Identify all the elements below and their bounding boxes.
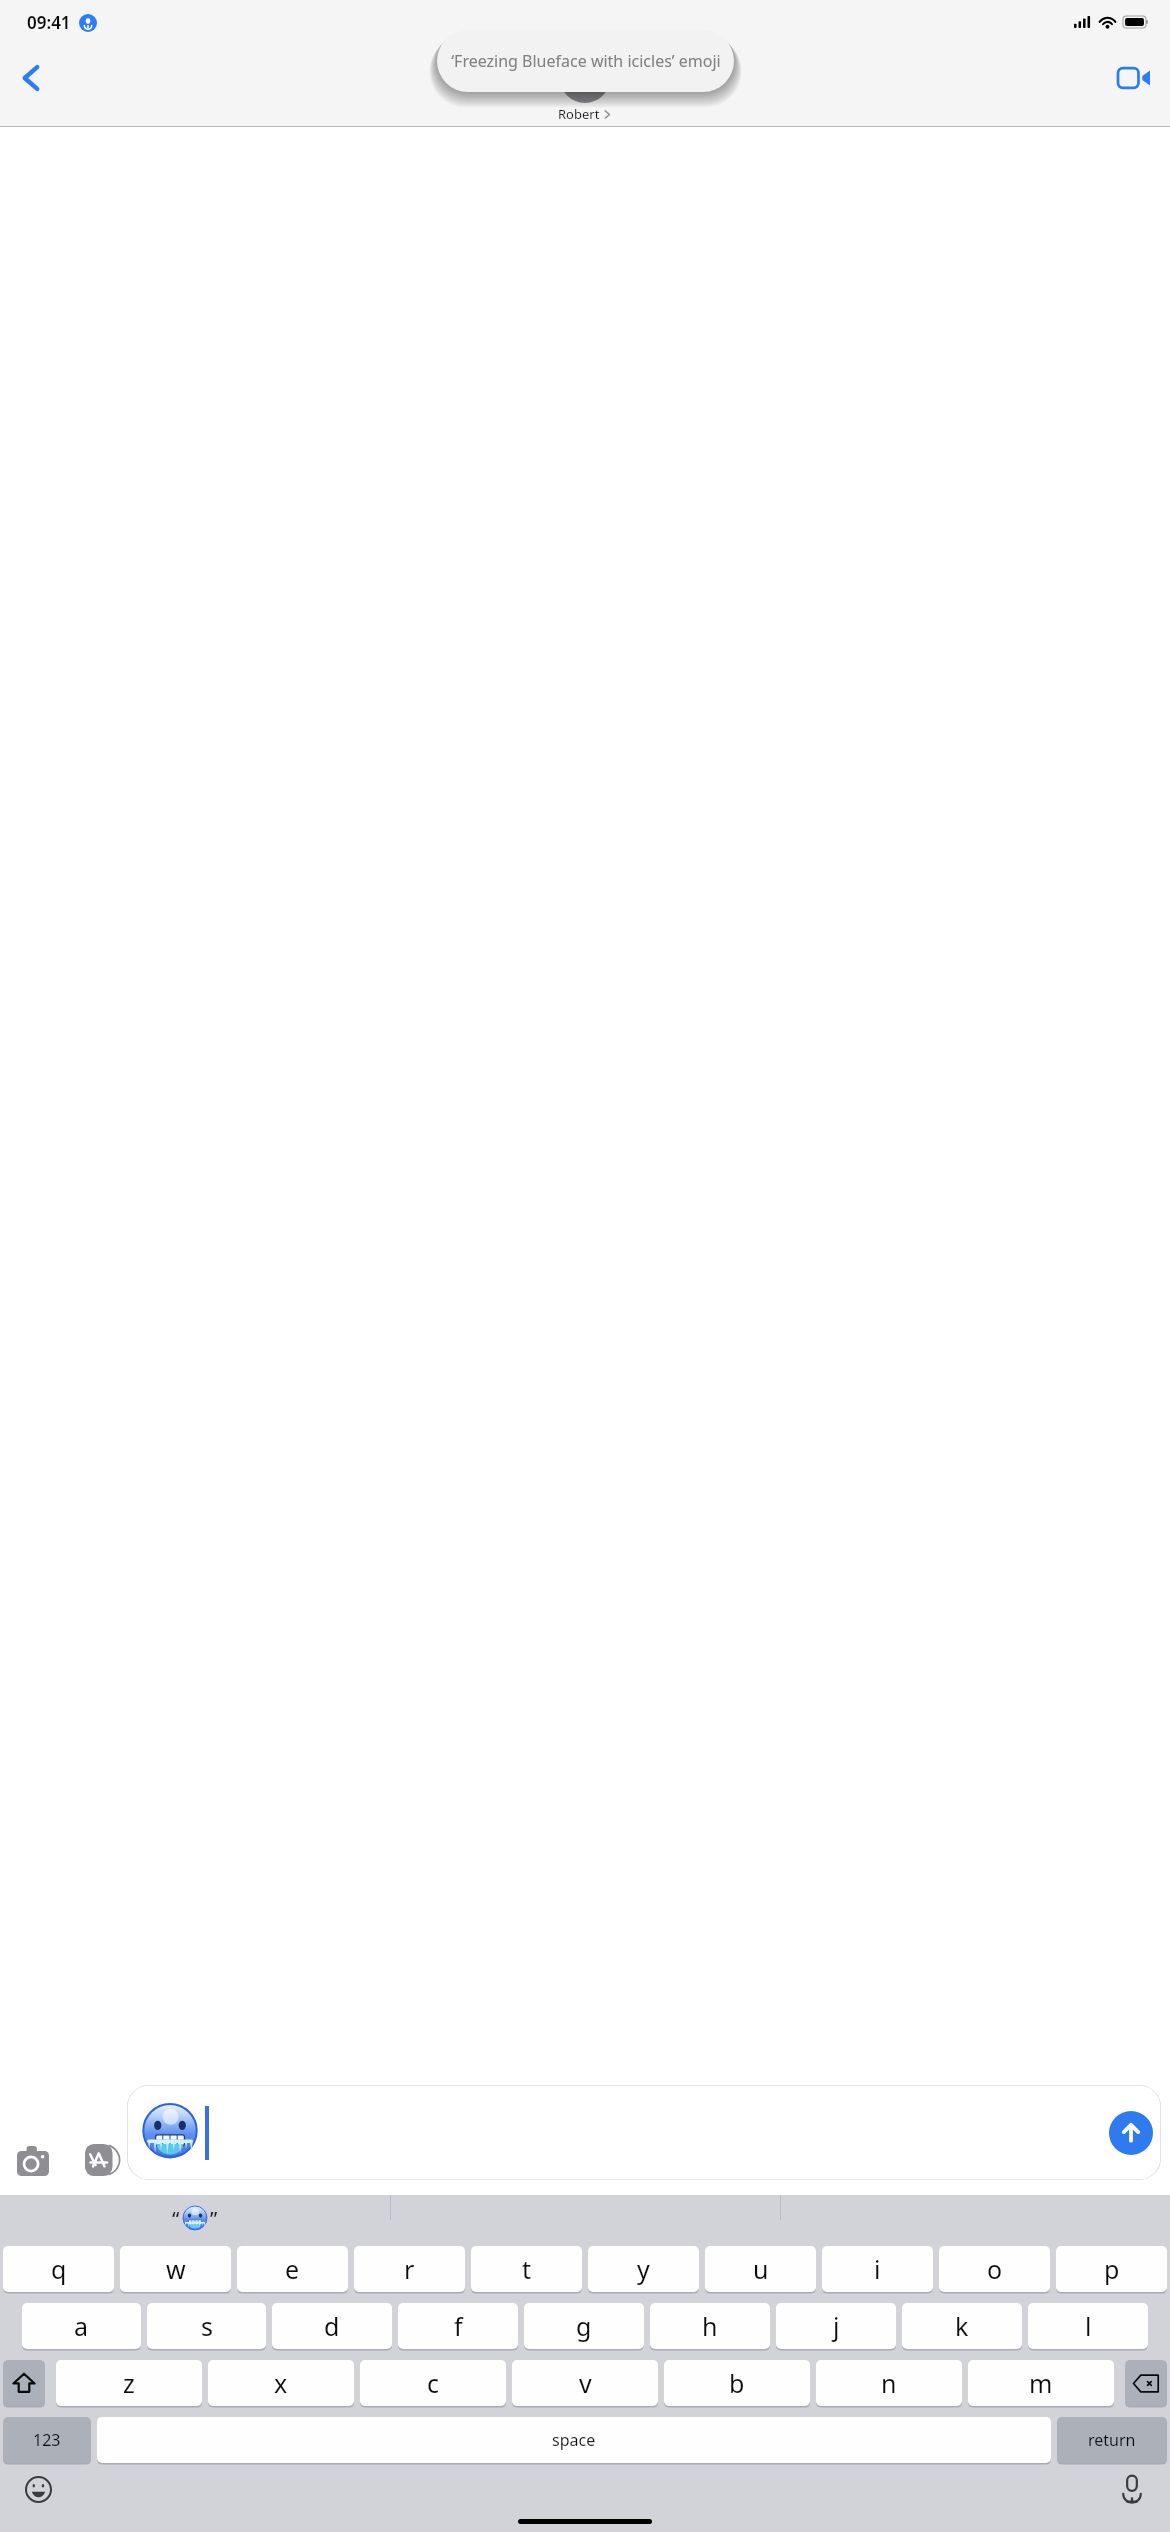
button[interactable]: d (272, 2303, 392, 2349)
button[interactable]: e (237, 2246, 348, 2292)
button[interactable]: c (360, 2360, 506, 2406)
button[interactable]: m (968, 2360, 1114, 2406)
button[interactable]: Send (1109, 2111, 1153, 2155)
staticText: g (576, 2309, 592, 2343)
button[interactable]: x (208, 2360, 354, 2406)
button[interactable]: ‘Freezing Blueface with icicles’ emoji (437, 30, 734, 92)
button[interactable]: Dictation (1108, 2465, 1156, 2513)
staticText: ‘Freezing Blueface with icicles’ emoji (451, 50, 721, 72)
staticText: i (874, 2252, 881, 2286)
staticText: y (637, 2252, 650, 2286)
button[interactable]: App Store apps (78, 2137, 124, 2183)
staticText: o (987, 2252, 1003, 2286)
button[interactable]: 123 (3, 2417, 91, 2463)
button[interactable]: r (354, 2246, 465, 2292)
button[interactable]: k (902, 2303, 1022, 2349)
button[interactable]: Send (127, 2085, 1161, 2180)
staticText: d (324, 2309, 340, 2343)
button[interactable]: space (97, 2417, 1051, 2463)
staticText: f (454, 2309, 463, 2343)
staticText: r (404, 2252, 415, 2286)
button[interactable]: f (398, 2303, 518, 2349)
button[interactable]: n (816, 2360, 962, 2406)
button[interactable]: Shift (3, 2360, 45, 2406)
staticText: ” (210, 2206, 218, 2232)
button[interactable]: i (822, 2246, 933, 2292)
button[interactable]: o (939, 2246, 1050, 2292)
staticText: Robert (558, 105, 600, 123)
button[interactable]: l (1028, 2303, 1148, 2349)
button[interactable]: j (776, 2303, 896, 2349)
button[interactable]: Back (8, 54, 56, 102)
button[interactable]: s (147, 2303, 266, 2349)
staticText: c (427, 2366, 440, 2400)
staticText: “ (172, 2206, 180, 2232)
staticText: l (1085, 2309, 1092, 2343)
button[interactable]: v (512, 2360, 658, 2406)
staticText: q (51, 2252, 67, 2286)
button[interactable]: Robert (558, 105, 612, 123)
staticText: e (285, 2252, 300, 2286)
button[interactable]: “ (168, 2202, 222, 2236)
button[interactable]: Robert contact photo (560, 53, 610, 103)
staticText: z (123, 2366, 135, 2400)
button[interactable]: Delete (1125, 2360, 1167, 2406)
button[interactable]: Camera (10, 2137, 56, 2183)
button[interactable]: y (588, 2246, 699, 2292)
button[interactable]: FaceTime video call (1110, 54, 1158, 102)
staticText: j (833, 2309, 840, 2343)
staticText: v (579, 2366, 592, 2400)
staticText: a (74, 2309, 89, 2343)
button[interactable]: z (56, 2360, 202, 2406)
staticText: x (274, 2366, 288, 2400)
button[interactable]: a (22, 2303, 141, 2349)
staticText: u (753, 2252, 769, 2286)
staticText: 123 (33, 2429, 61, 2451)
staticText: p (1104, 2252, 1120, 2286)
button[interactable]: u (705, 2246, 816, 2292)
staticText: return (1088, 2429, 1136, 2451)
staticText: h (702, 2309, 718, 2343)
button[interactable]: b (664, 2360, 810, 2406)
staticText: w (166, 2252, 186, 2286)
staticText: 09:41 (27, 11, 71, 34)
button[interactable]: w (120, 2246, 231, 2292)
button[interactable]: g (524, 2303, 644, 2349)
button[interactable]: t (471, 2246, 582, 2292)
button[interactable]: Emoji keyboard (14, 2465, 62, 2513)
staticText: b (729, 2366, 745, 2400)
button[interactable]: return (1057, 2417, 1167, 2463)
staticText: m (1029, 2366, 1053, 2400)
button[interactable]: p (1056, 2246, 1167, 2292)
staticText: k (955, 2309, 969, 2343)
button[interactable]: h (650, 2303, 770, 2349)
staticText: s (201, 2309, 213, 2343)
staticText: space (552, 2429, 596, 2451)
staticText: t (522, 2252, 532, 2286)
button[interactable]: q (3, 2246, 114, 2292)
staticText: n (881, 2366, 897, 2400)
